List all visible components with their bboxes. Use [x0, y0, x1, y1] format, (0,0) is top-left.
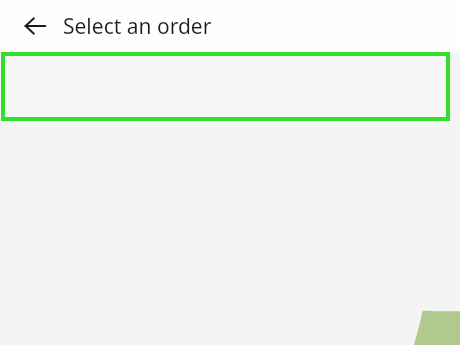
button[interactable]: Back: [17, 8, 53, 44]
button[interactable]: Order item: [1, 52, 450, 121]
staticText: Select an order: [63, 12, 212, 41]
